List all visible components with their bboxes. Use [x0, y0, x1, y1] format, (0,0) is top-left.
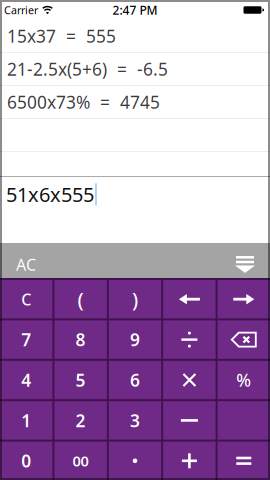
staticText: 00 — [73, 451, 89, 471]
staticText: 2:47 PM — [112, 2, 157, 18]
button[interactable]: Backspace — [218, 320, 270, 359]
staticText: 4 — [21, 368, 31, 391]
button[interactable]: Move cursor right — [218, 280, 270, 318]
button[interactable]: ) — [109, 280, 161, 318]
button[interactable]: Decimal point — [109, 442, 161, 480]
button[interactable]: Subtract — [163, 401, 216, 440]
button[interactable]: 6500x73% = 4745 — [0, 86, 270, 119]
button[interactable]: 2 — [54, 401, 107, 440]
button[interactable]: 15x37 = 555 — [0, 20, 270, 53]
staticText: 6 — [130, 368, 140, 391]
staticText: ( — [78, 286, 84, 312]
button[interactable]: 5 — [54, 361, 107, 399]
staticText: 1 — [21, 409, 31, 432]
button[interactable]: 4 — [0, 361, 52, 399]
button[interactable]: Multiply — [163, 361, 216, 399]
staticText: ) — [132, 286, 138, 312]
button[interactable]: Move cursor left — [163, 280, 216, 318]
button[interactable]: C — [0, 280, 52, 318]
button[interactable]: Hide keypad — [235, 256, 270, 273]
staticText: 7 — [21, 328, 31, 351]
staticText: 5 — [76, 368, 86, 391]
button[interactable]: 6 — [109, 361, 161, 399]
button[interactable]: 21-2.5x(5+6) = -6.5 — [0, 53, 270, 86]
staticText: % — [236, 368, 251, 391]
staticText: AC — [16, 254, 36, 275]
staticText: Carrier — [4, 3, 38, 17]
staticText: 9 — [130, 328, 140, 351]
staticText: 2 — [76, 409, 86, 432]
button[interactable]: Add — [163, 442, 216, 480]
staticText: C — [21, 289, 31, 310]
staticText: 51x6x555 — [6, 181, 94, 208]
button[interactable]: 3 — [109, 401, 161, 440]
button[interactable]: 1 — [0, 401, 52, 440]
button[interactable]: 0 — [0, 442, 52, 480]
button[interactable]: % — [218, 361, 270, 399]
button[interactable]: 8 — [54, 320, 107, 359]
button[interactable]: Divide — [163, 320, 216, 359]
button[interactable] — [0, 119, 270, 152]
button[interactable]: 7 — [0, 320, 52, 359]
button[interactable]: ( — [54, 280, 107, 318]
staticText: 0 — [21, 449, 31, 472]
button[interactable]: Equals — [218, 442, 270, 480]
staticText: 8 — [76, 328, 86, 351]
button[interactable]: AC — [0, 254, 36, 275]
staticText: 15x37 = 555 — [7, 24, 116, 47]
staticText: 21-2.5x(5+6) = -6.5 — [7, 57, 168, 80]
staticText: 6500x73% = 4745 — [7, 90, 160, 113]
staticText: 3 — [130, 409, 140, 432]
button[interactable]: 00 — [54, 442, 107, 480]
button[interactable]: 9 — [109, 320, 161, 359]
